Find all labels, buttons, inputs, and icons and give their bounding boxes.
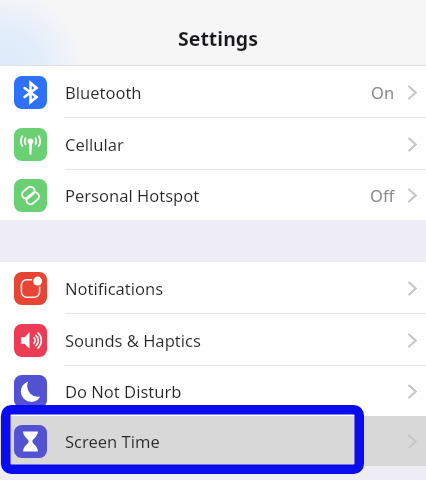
- staticText: Settings: [178, 25, 258, 52]
- button[interactable]: Sounds & Haptics: [0, 314, 426, 366]
- staticText: Personal Hotspot: [65, 184, 200, 206]
- button[interactable]: Cellular: [0, 118, 426, 170]
- staticText: On: [371, 81, 395, 103]
- staticText: Sounds & Haptics: [65, 329, 201, 351]
- staticText: Do Not Disturb: [65, 380, 182, 402]
- button[interactable]: Notifications: [0, 262, 426, 314]
- button[interactable]: Screen Time: [0, 416, 426, 466]
- staticText: Cellular: [65, 133, 124, 155]
- staticText: Notifications: [65, 277, 164, 299]
- staticText: Screen Time: [65, 430, 160, 452]
- staticText: Bluetooth: [65, 81, 142, 103]
- button[interactable]: Personal Hotspot: [0, 170, 426, 220]
- staticText: Off: [370, 184, 395, 206]
- button[interactable]: Do Not Disturb: [0, 366, 426, 416]
- button[interactable]: Bluetooth: [0, 66, 426, 118]
